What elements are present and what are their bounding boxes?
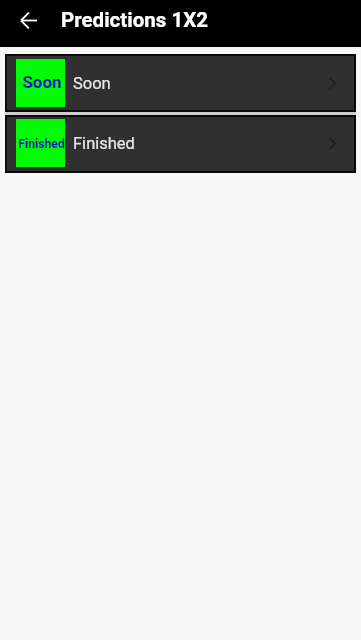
button[interactable]: Soon — [7, 56, 354, 110]
staticText: Soon — [73, 74, 111, 93]
button[interactable]: Back — [0, 0, 48, 40]
staticText: Finished — [18, 137, 65, 151]
button[interactable]: Finished — [7, 117, 354, 171]
staticText: Predictions 1X2 — [61, 8, 208, 32]
staticText: Finished — [73, 134, 135, 153]
staticText: Soon — [22, 72, 62, 92]
